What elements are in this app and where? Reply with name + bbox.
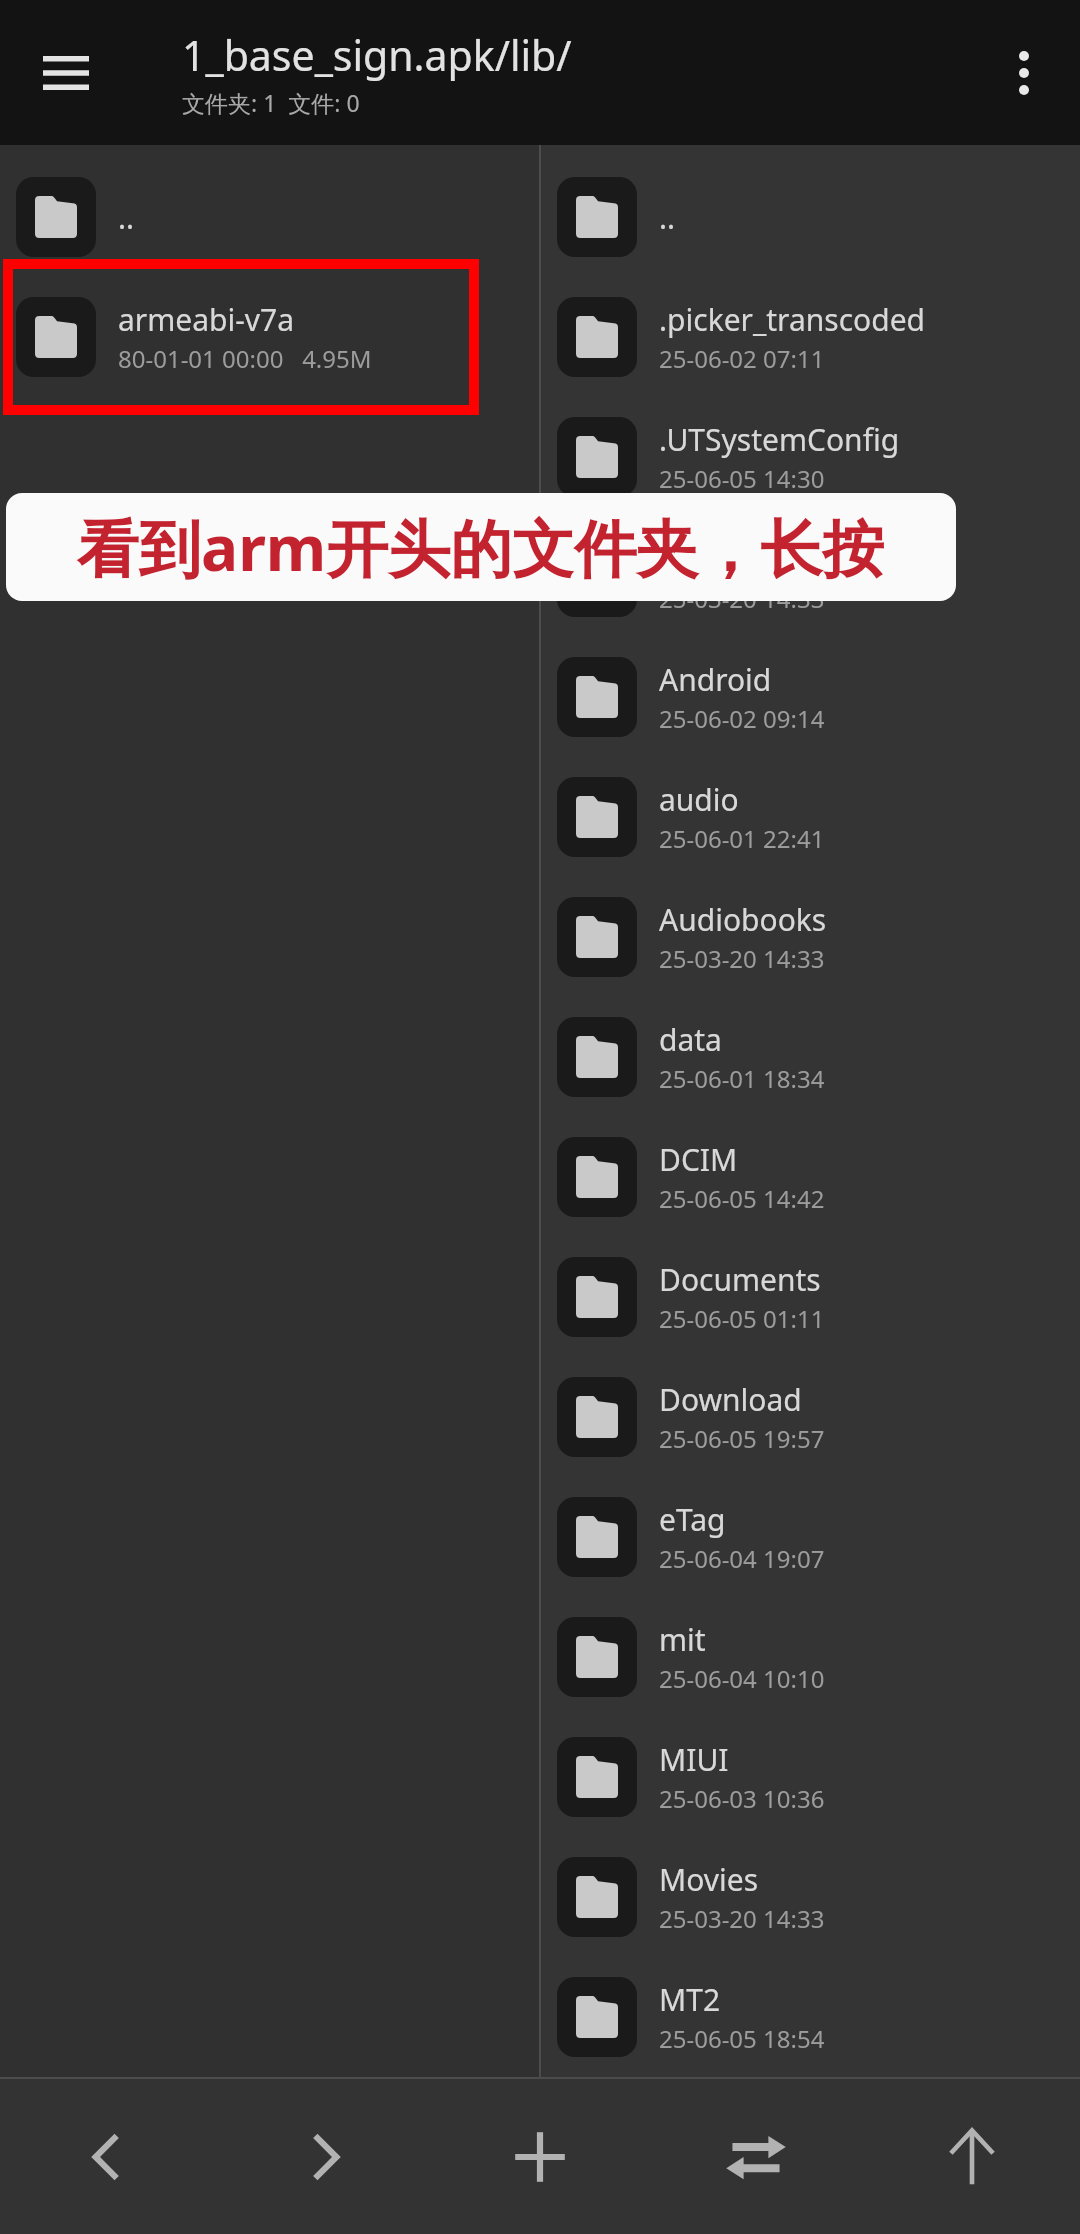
button[interactable]: audio xyxy=(541,757,1080,877)
button[interactable]: MIUI xyxy=(541,1717,1080,1837)
button[interactable]: .. xyxy=(541,157,1080,277)
staticText: armeabi-v7a xyxy=(118,299,295,340)
button[interactable]: Back xyxy=(33,2082,183,2232)
button[interactable]: Menu xyxy=(30,37,102,109)
staticText: 25-06-04 19:07 xyxy=(659,1542,825,1575)
staticText: .UTSystemConfig xyxy=(659,419,900,460)
staticText: 25-06-05 18:54 xyxy=(659,2022,825,2055)
button[interactable]: .ofsys xyxy=(541,517,1080,637)
button[interactable]: More options xyxy=(984,33,1064,113)
staticText: 25-03-20 14:33 xyxy=(659,942,825,975)
staticText: MT2 xyxy=(659,1979,721,2020)
button[interactable]: Up xyxy=(897,2082,1047,2232)
button[interactable]: New xyxy=(465,2082,615,2232)
staticText: 25-06-02 09:14 xyxy=(659,702,825,735)
button[interactable]: Audiobooks xyxy=(541,877,1080,997)
staticText: 25-06-05 19:57 xyxy=(659,1422,825,1455)
staticText: 25-06-01 18:34 xyxy=(659,1062,825,1095)
button[interactable]: .UTSystemConfig xyxy=(541,397,1080,517)
staticText: 25-06-04 10:10 xyxy=(659,1662,825,1695)
staticText: Android xyxy=(659,659,772,700)
staticText: 25-03-20 14:33 xyxy=(659,1902,825,1935)
staticText: 25-06-05 14:30 xyxy=(659,462,825,495)
staticText: 25-06-03 10:36 xyxy=(659,1782,825,1815)
button[interactable]: armeabi-v7a xyxy=(0,277,539,397)
staticText: .ofsys xyxy=(659,539,740,580)
staticText: mit xyxy=(659,1619,706,1660)
button[interactable]: Documents xyxy=(541,1237,1080,1357)
button[interactable]: data xyxy=(541,997,1080,1117)
staticText: .picker_transcoded xyxy=(659,299,926,340)
staticText: 80-01-01 00:00 4.95M xyxy=(118,342,372,375)
staticText: Audiobooks xyxy=(659,899,827,940)
button[interactable]: Movies xyxy=(541,1837,1080,1957)
button[interactable]: Android xyxy=(541,637,1080,757)
staticText: MIUI xyxy=(659,1739,729,1780)
staticText: 1_base_sign.apk/lib/ xyxy=(182,27,572,83)
staticText: 25-03-20 14:33 xyxy=(659,582,825,615)
button[interactable]: .picker_transcoded xyxy=(541,277,1080,397)
button[interactable]: mit xyxy=(541,1597,1080,1717)
button[interactable]: Download xyxy=(541,1357,1080,1477)
button[interactable]: Switch panel xyxy=(681,2082,831,2232)
staticText: Download xyxy=(659,1379,802,1420)
staticText: Documents xyxy=(659,1259,821,1300)
button[interactable]: eTag xyxy=(541,1477,1080,1597)
staticText: 25-06-01 22:41 xyxy=(659,822,825,855)
button[interactable]: .. xyxy=(0,157,539,277)
staticText: 文件夹: 1 文件: 0 xyxy=(182,87,360,118)
staticText: .. xyxy=(118,197,135,238)
staticText: eTag xyxy=(659,1499,726,1540)
staticText: DCIM xyxy=(659,1139,738,1180)
button[interactable]: MT2 xyxy=(541,1957,1080,2077)
staticText: Movies xyxy=(659,1859,759,1900)
button[interactable]: Forward xyxy=(249,2082,399,2232)
button[interactable]: DCIM xyxy=(541,1117,1080,1237)
staticText: 看到arm开头的文件夹，长按 xyxy=(77,505,885,590)
staticText: 25-06-02 07:11 xyxy=(659,342,825,375)
staticText: audio xyxy=(659,779,739,820)
staticText: 25-06-05 14:42 xyxy=(659,1182,825,1215)
staticText: 25-06-05 01:11 xyxy=(659,1302,825,1335)
staticText: data xyxy=(659,1019,722,1060)
staticText: .. xyxy=(659,197,676,238)
